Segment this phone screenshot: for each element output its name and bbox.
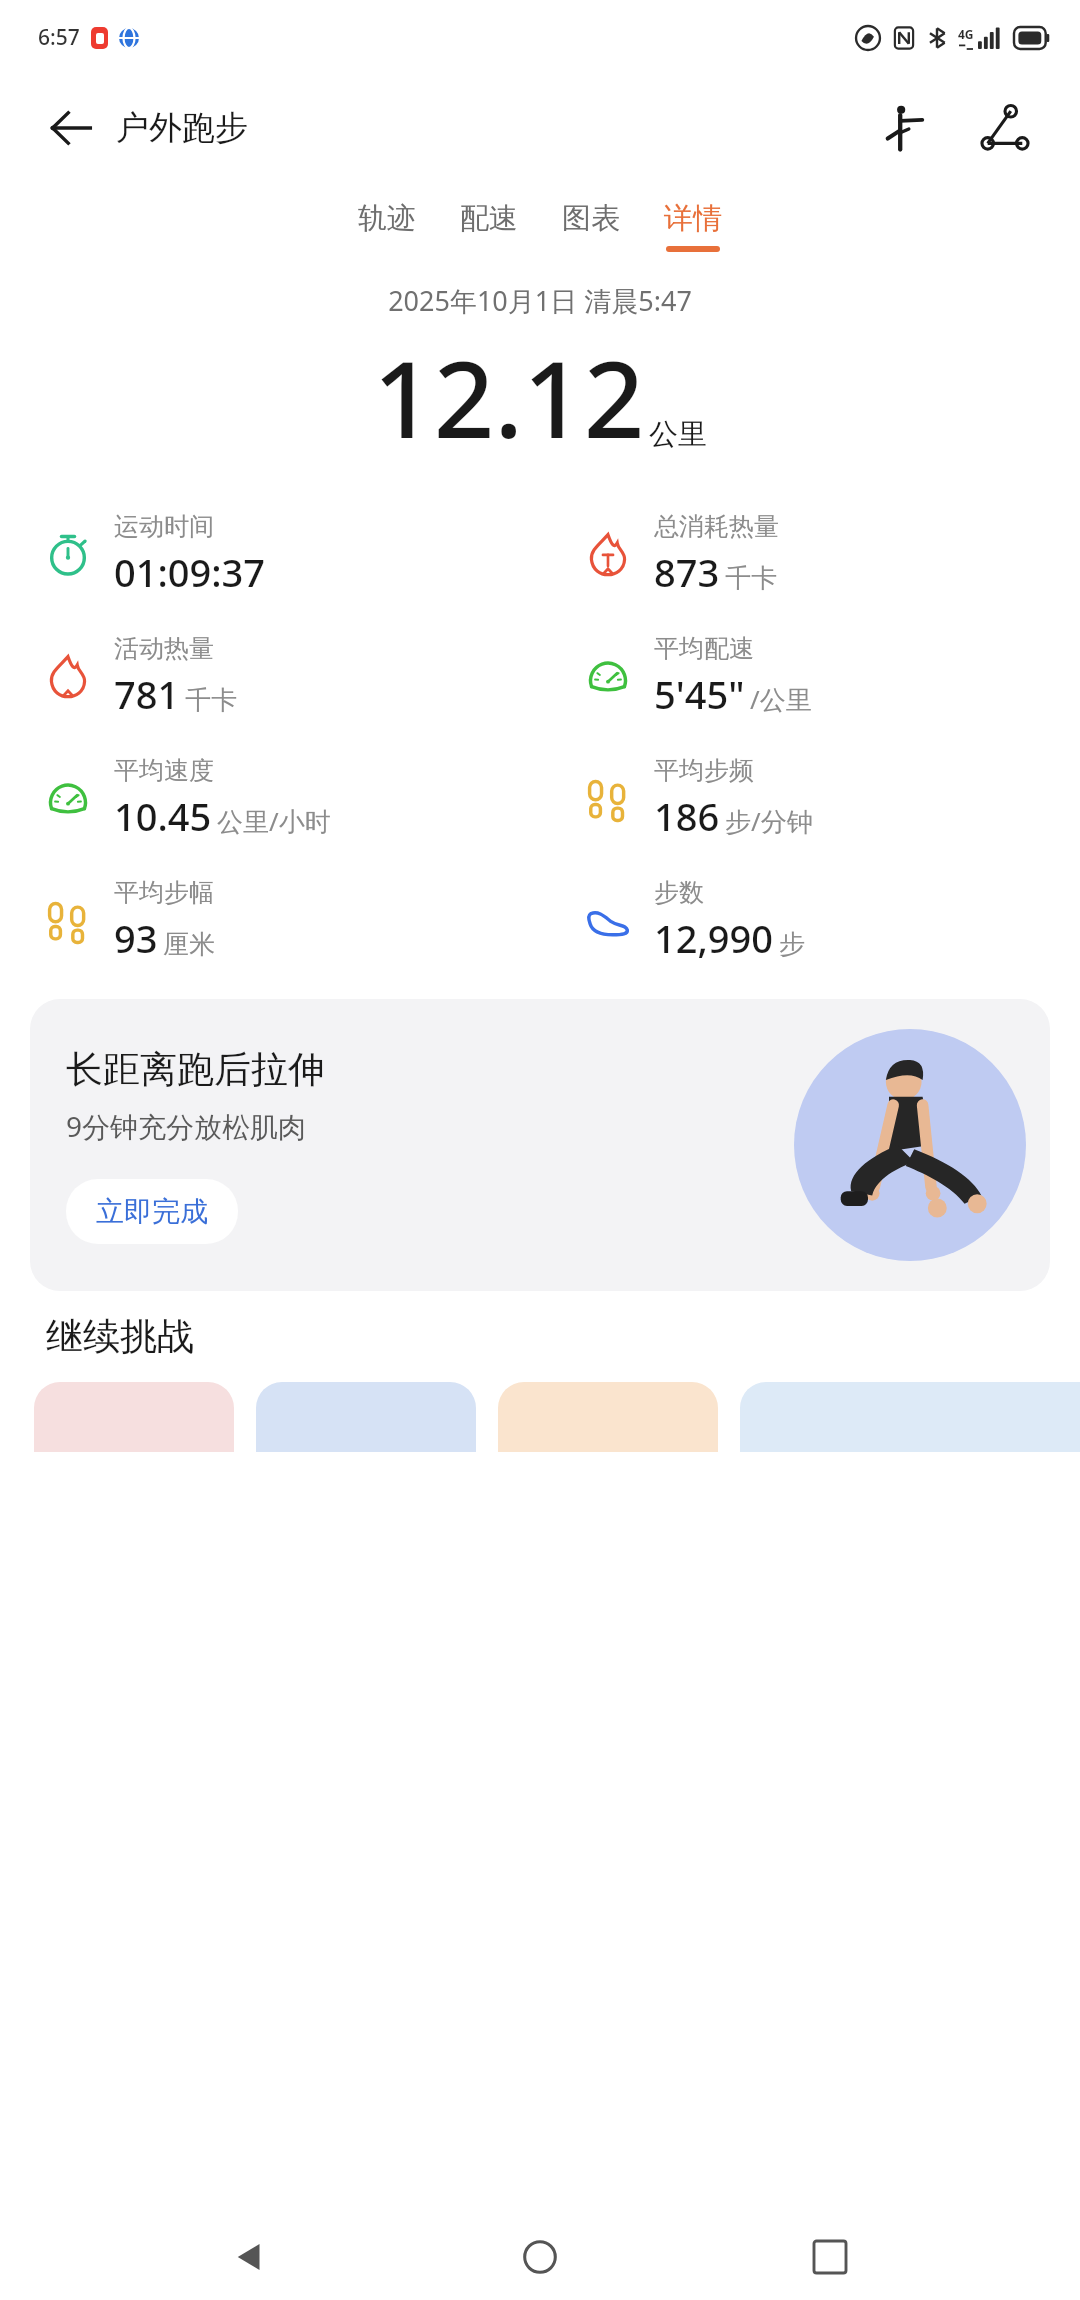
staticText: 配速 [460,200,518,237]
staticText: 93 [114,912,158,964]
staticText: 186 [654,790,720,842]
staticText: 4G [958,26,974,42]
staticText: 平均配速 [654,633,754,664]
button[interactable]: 图表 [540,194,642,258]
staticText: 继续挑战 [46,1313,194,1360]
staticText: 详情 [664,200,722,237]
staticText: 公里/小时 [217,803,331,839]
staticText: 千卡 [725,562,777,595]
staticText: 运动时间 [114,511,214,542]
button[interactable]: Home [500,2217,580,2297]
button[interactable] [256,1382,476,1452]
button[interactable]: 详情 [642,194,744,258]
button[interactable] [498,1382,718,1452]
button[interactable] [34,1382,234,1452]
button[interactable]: 平均速度 [0,737,540,859]
button[interactable]: 步数 [540,859,1080,981]
staticText: 轨迹 [358,200,416,237]
button[interactable]: 平均步频 [540,737,1080,859]
staticText: 步/分钟 [725,803,813,839]
button[interactable]: 轨迹 [336,194,438,258]
staticText: 12.12 [373,325,645,469]
staticText: 12,990 [654,912,774,964]
staticText: 步 [779,928,805,961]
staticText: 6:57 [38,23,80,52]
staticText: 平均速度 [114,755,214,786]
staticText: 2025年10月1日 清晨5:47 [0,282,1080,319]
staticText: 活动热量 [114,633,214,664]
staticText: 平均步幅 [114,877,214,908]
button[interactable]: 平均步幅 [0,859,540,981]
staticText: 9分钟充分放松肌肉 [66,1107,307,1145]
staticText: 10.45 [114,790,212,842]
staticText: 厘米 [163,928,215,961]
staticText: 781 [114,668,180,720]
staticText: 户外跑步 [116,107,248,149]
button[interactable]: 运动时间 [0,493,540,615]
staticText: 总消耗热量 [654,511,779,542]
staticText: 平均步频 [654,755,754,786]
staticText: 千卡 [185,684,237,717]
button[interactable]: Recents [790,2217,870,2297]
button[interactable]: Back [40,97,102,159]
staticText: 公里 [649,416,707,453]
staticText: 立即完成 [96,1194,208,1229]
staticText: 873 [654,546,720,598]
button[interactable]: Back [210,2217,290,2297]
button[interactable]: 配速 [438,194,540,258]
button[interactable]: 平均配速 [540,615,1080,737]
button[interactable]: Running posture [866,89,944,167]
staticText: /公里 [750,681,812,717]
button[interactable]: 总消耗热量 [540,493,1080,615]
button[interactable]: Share route [966,89,1044,167]
button[interactable]: 活动热量 [0,615,540,737]
staticText: 01:09:37 [114,546,266,598]
staticText: 长距离跑后拉伸 [66,1046,325,1093]
staticText: 步数 [654,877,704,908]
button[interactable]: 立即完成 [66,1179,238,1244]
button[interactable]: 长距离跑后拉伸 [30,999,1050,1291]
staticText: 图表 [562,200,620,237]
staticText: 5'45" [654,668,745,720]
